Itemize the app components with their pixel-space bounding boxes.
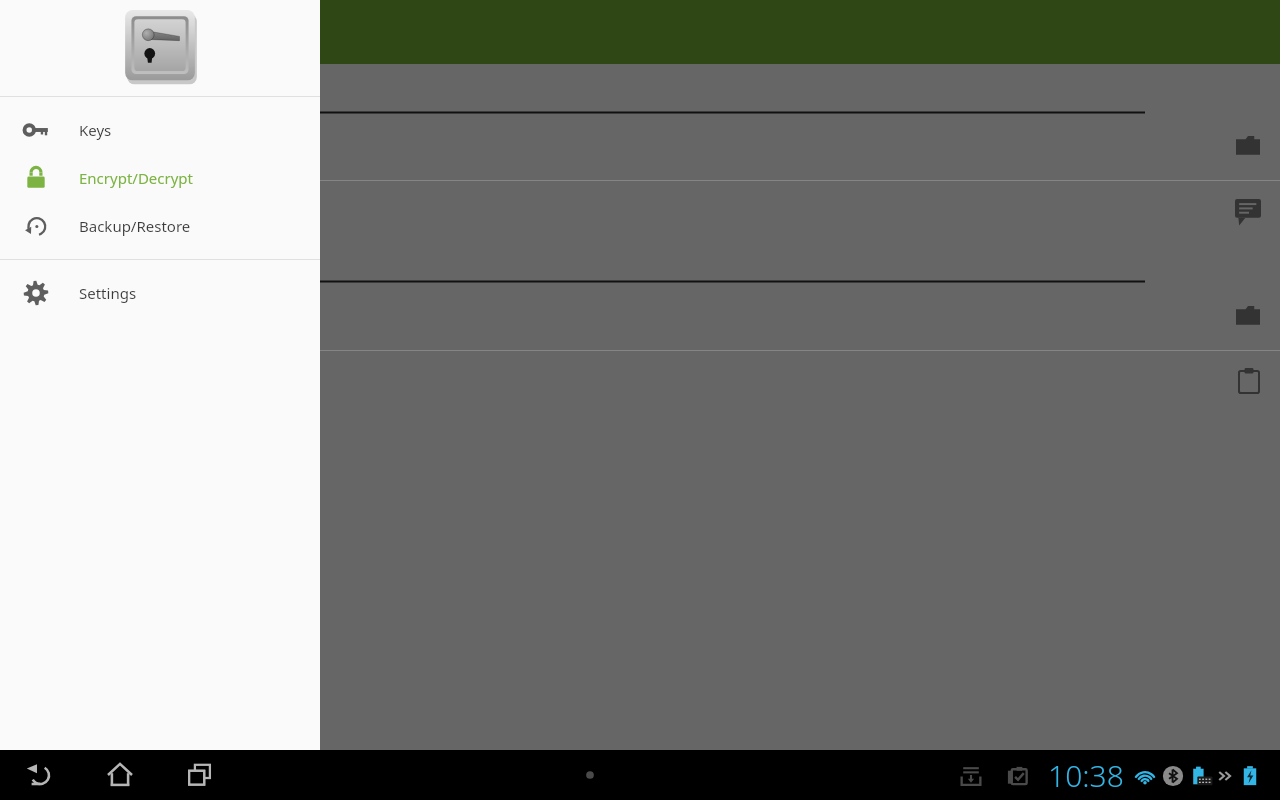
staticText: Backup/Restore xyxy=(79,216,191,236)
button[interactable]: Settings xyxy=(0,269,320,317)
staticText: Encrypt/Decrypt xyxy=(79,168,193,188)
staticText: Settings xyxy=(79,283,137,303)
button[interactable]: Recent apps xyxy=(178,753,222,797)
button[interactable]: Encrypt/Decrypt xyxy=(0,154,320,202)
button[interactable]: System status xyxy=(958,755,1270,796)
staticText: Keys xyxy=(79,120,112,140)
button[interactable]: Back xyxy=(18,753,62,797)
staticText: 10:38 xyxy=(1048,755,1124,796)
button[interactable]: Keys xyxy=(0,106,320,154)
button[interactable]: Backup/Restore xyxy=(0,202,320,250)
button[interactable]: Home xyxy=(98,753,142,797)
